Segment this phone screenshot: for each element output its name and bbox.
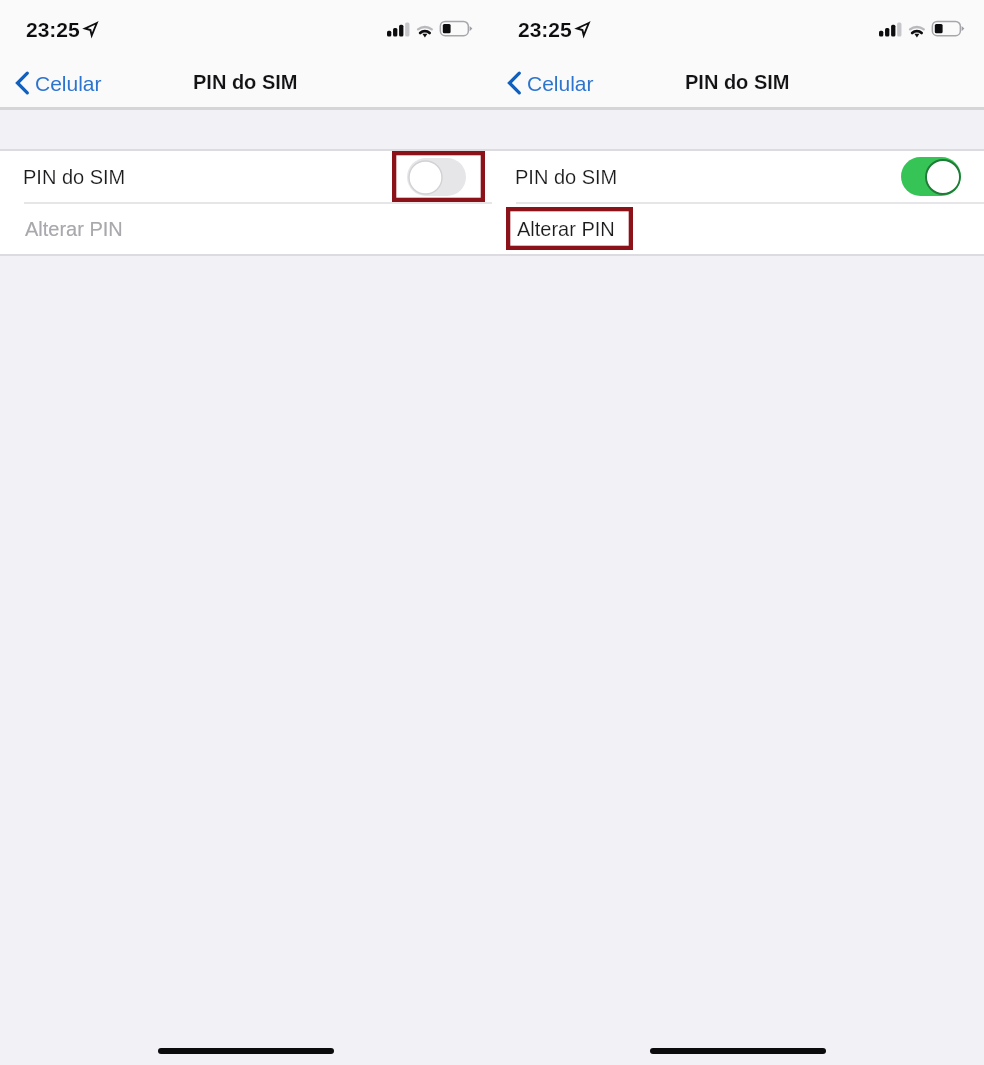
button[interactable]: Desativar PIN do SIM (901, 157, 961, 196)
staticText: PIN do SIM (685, 71, 790, 93)
button[interactable]: Ativar PIN do SIM (407, 158, 466, 196)
staticText: Celular (527, 72, 594, 95)
staticText: PIN do SIM (23, 166, 126, 188)
button[interactable]: Voltar para Celular (14, 71, 102, 97)
button[interactable]: Alterar PIN (0, 203, 492, 255)
staticText: PIN do SIM (515, 166, 618, 188)
staticText: Alterar PIN (517, 218, 615, 240)
button[interactable]: Alterar PIN (492, 203, 984, 255)
button[interactable]: PIN do SIM (492, 151, 984, 202)
staticText: 23:25 (518, 18, 572, 41)
button[interactable]: PIN do SIM (0, 151, 492, 202)
staticText: Alterar PIN (25, 218, 123, 240)
staticText: Celular (35, 72, 102, 95)
staticText: PIN do SIM (193, 71, 298, 93)
button[interactable]: Voltar para Celular (506, 71, 594, 97)
staticText: 23:25 (26, 18, 80, 41)
